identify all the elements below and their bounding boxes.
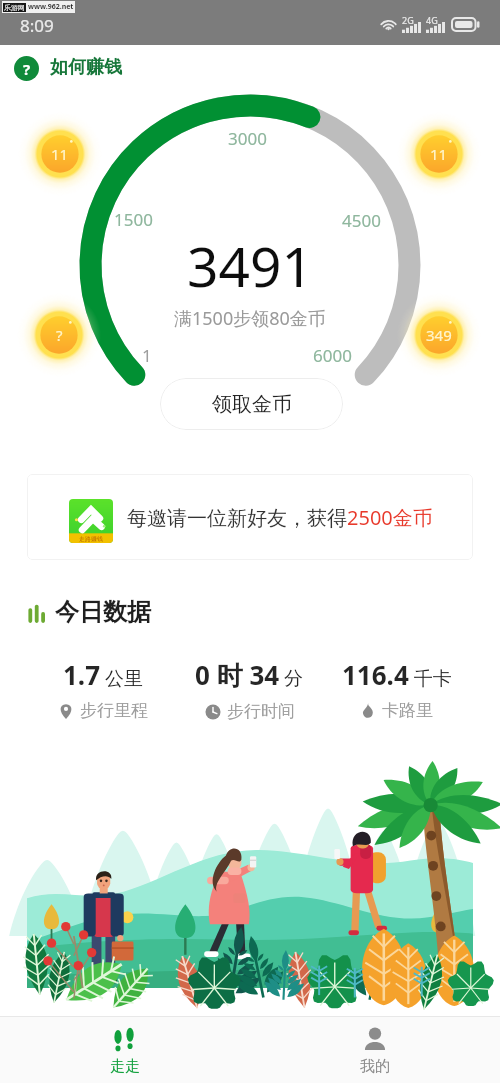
staticText: 6000: [313, 344, 352, 367]
button[interactable]: 1.7 公里: [30, 657, 176, 721]
staticText: 我的: [360, 1057, 390, 1076]
staticText: 步行时间: [227, 701, 295, 722]
staticText: 4500: [342, 209, 381, 232]
staticText: 4G: [426, 14, 438, 26]
staticText: 349: [426, 325, 452, 345]
staticText: 走走: [110, 1057, 140, 1076]
staticText: 1: [142, 344, 152, 367]
staticText: 3000: [228, 127, 267, 150]
button[interactable]: Coin 11: [397, 112, 481, 196]
staticText: 走路赚钱: [79, 535, 103, 543]
button[interactable]: Coin ?: [17, 293, 101, 377]
button[interactable]: 走走: [0, 1017, 250, 1083]
staticText: 1.7 公里: [63, 657, 143, 692]
button[interactable]: Coin 349: [397, 293, 481, 377]
staticText: 3491: [187, 228, 313, 303]
staticText: ?: [56, 325, 63, 345]
staticText: 11: [51, 144, 69, 164]
button[interactable]: 走路赚钱: [27, 474, 473, 560]
staticText: 每邀请一位新好友，获得2500金币: [127, 504, 433, 531]
staticText: 满1500步领80金币: [174, 306, 326, 331]
staticText: 乐游网: [4, 3, 25, 12]
button[interactable]: 0 时 34 分: [176, 657, 323, 722]
button[interactable]: ?: [14, 56, 122, 81]
staticText: 步行里程: [80, 700, 148, 721]
staticText: 1500: [114, 208, 153, 231]
staticText: 8:09: [20, 14, 54, 37]
button[interactable]: 领取金币: [160, 378, 343, 430]
button[interactable]: 我的: [250, 1017, 500, 1083]
staticText: 今日数据: [55, 597, 151, 627]
staticText: ?: [23, 59, 31, 79]
staticText: 116.4 千卡: [342, 657, 452, 692]
staticText: 领取金币: [212, 392, 292, 417]
button[interactable]: Coin 11: [18, 112, 102, 196]
button[interactable]: 今日数据: [27, 598, 151, 628]
staticText: 0 时 34 分: [195, 657, 304, 693]
button[interactable]: 116.4 千卡: [323, 657, 470, 721]
staticText: 11: [430, 144, 448, 164]
staticText: 2G: [402, 14, 414, 26]
staticText: 卡路里: [382, 700, 433, 721]
staticText: 如何赚钱: [50, 56, 122, 79]
staticText: www.962.net: [28, 2, 74, 12]
